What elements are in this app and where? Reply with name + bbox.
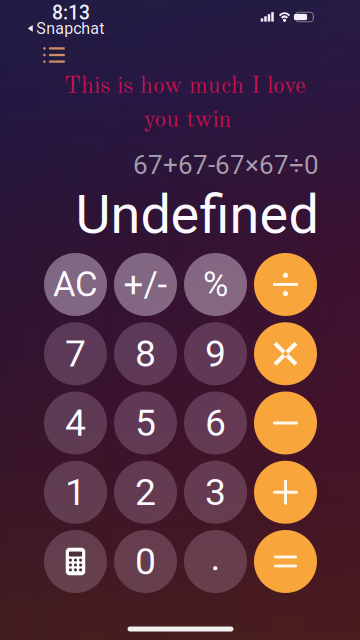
button[interactable]: Add: [254, 461, 317, 524]
button[interactable]: 1: [44, 461, 107, 524]
button[interactable]: +/-: [114, 253, 177, 316]
staticText: %: [203, 264, 228, 305]
staticText: you twin: [143, 109, 231, 132]
staticText: 4: [65, 401, 86, 445]
staticText: Snapchat: [36, 19, 104, 38]
button[interactable]: 5: [114, 391, 177, 454]
staticText: 6: [205, 401, 226, 445]
button[interactable]: 8: [114, 322, 177, 385]
staticText: 5: [135, 401, 156, 445]
button[interactable]: .: [184, 530, 247, 593]
button[interactable]: Subtract: [254, 391, 317, 454]
button[interactable]: Multiply: [254, 322, 317, 385]
button[interactable]: %: [184, 253, 247, 316]
button[interactable]: Menu: [43, 47, 65, 62]
button[interactable]: 6: [184, 391, 247, 454]
staticText: 2: [135, 470, 156, 514]
button[interactable]: Equals: [254, 530, 317, 593]
staticText: .: [210, 536, 220, 579]
staticText: +/-: [123, 264, 167, 305]
staticText: 9: [205, 332, 226, 376]
staticText: 1: [65, 470, 86, 514]
staticText: Undefined: [75, 183, 318, 246]
button[interactable]: 4: [44, 391, 107, 454]
button[interactable]: 2: [114, 461, 177, 524]
staticText: 3: [205, 470, 226, 514]
staticText: 8: [135, 332, 156, 376]
staticText: This is how much I love: [64, 75, 306, 98]
button[interactable]: AC: [44, 253, 107, 316]
button[interactable]: 7: [44, 322, 107, 385]
button[interactable]: 3: [184, 461, 247, 524]
button[interactable]: Scientific calculator: [44, 530, 107, 593]
staticText: 7: [65, 332, 86, 376]
button[interactable]: 0: [114, 530, 177, 593]
staticText: 0: [135, 540, 156, 583]
staticText: 8:13: [52, 2, 90, 24]
staticText: 67+67-67×67÷0: [133, 150, 319, 180]
button[interactable]: Divide: [254, 253, 317, 316]
staticText: AC: [53, 264, 98, 305]
button[interactable]: 9: [184, 322, 247, 385]
